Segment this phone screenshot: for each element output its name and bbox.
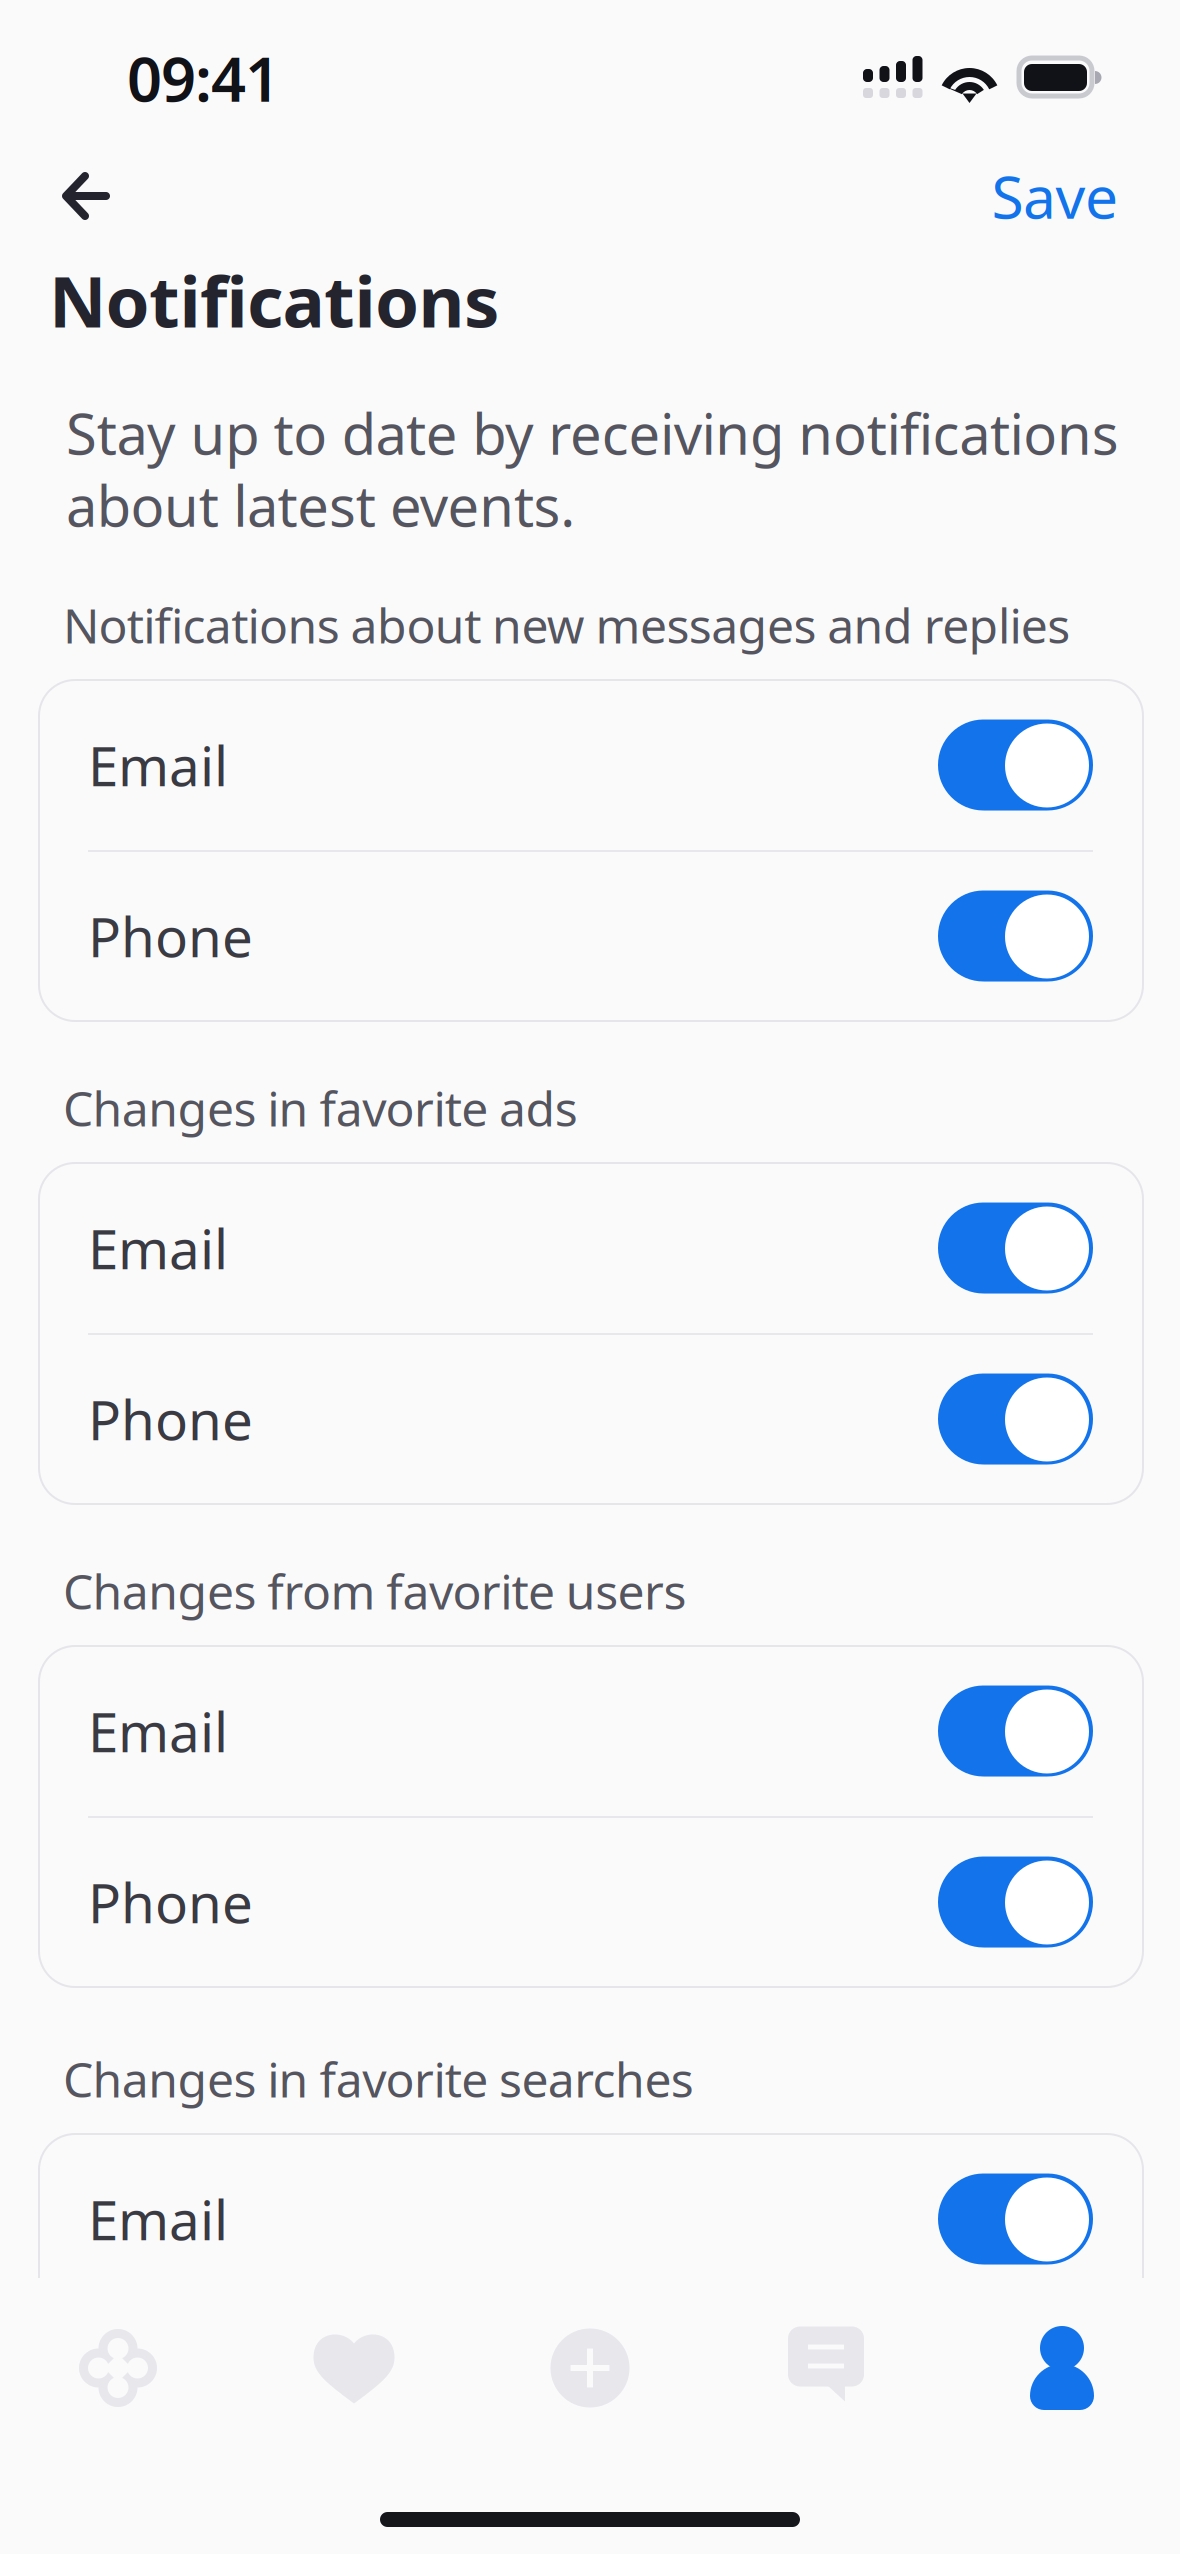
button[interactable]: Email bbox=[39, 2134, 1143, 2304]
button[interactable]: Profile bbox=[944, 2309, 1180, 2427]
button[interactable]: Email bbox=[39, 1646, 1143, 1816]
staticText: Phone bbox=[88, 1866, 253, 1938]
staticText: Notifications about new messages and rep… bbox=[63, 593, 1070, 657]
staticText: Phone bbox=[88, 1383, 253, 1455]
staticText: Email bbox=[88, 1212, 228, 1284]
button[interactable]: Favorites bbox=[236, 2309, 472, 2427]
button[interactable]: Phone bbox=[39, 2305, 1143, 2475]
staticText: 09:41 bbox=[127, 37, 280, 119]
button[interactable]: Messages bbox=[708, 2305, 944, 2423]
staticText: Save bbox=[991, 157, 1118, 235]
button[interactable]: Back bbox=[62, 150, 172, 242]
button[interactable]: Email bbox=[39, 1163, 1143, 1333]
staticText: Email bbox=[88, 1695, 228, 1767]
button[interactable]: Phone bbox=[39, 1334, 1143, 1504]
button[interactable]: Categories bbox=[0, 2309, 236, 2427]
button[interactable]: Phone bbox=[39, 1817, 1143, 1987]
button[interactable]: Email bbox=[39, 680, 1143, 850]
button[interactable]: Save bbox=[898, 150, 1118, 242]
staticText: Email bbox=[88, 2183, 228, 2255]
staticText: Phone bbox=[88, 900, 253, 972]
staticText: Changes in favorite ads bbox=[63, 1076, 578, 1140]
staticText: Stay up to date by receiving notificatio… bbox=[66, 396, 1119, 470]
staticText: about latest events. bbox=[66, 468, 575, 542]
staticText: Changes in favorite searches bbox=[63, 2047, 694, 2111]
staticText: Email bbox=[88, 729, 228, 801]
staticText: Notifications bbox=[49, 253, 499, 347]
button[interactable]: Phone bbox=[39, 851, 1143, 1021]
staticText: Phone bbox=[88, 2354, 253, 2426]
button[interactable]: Create listing bbox=[472, 2309, 708, 2427]
staticText: Changes from favorite users bbox=[63, 1559, 686, 1623]
